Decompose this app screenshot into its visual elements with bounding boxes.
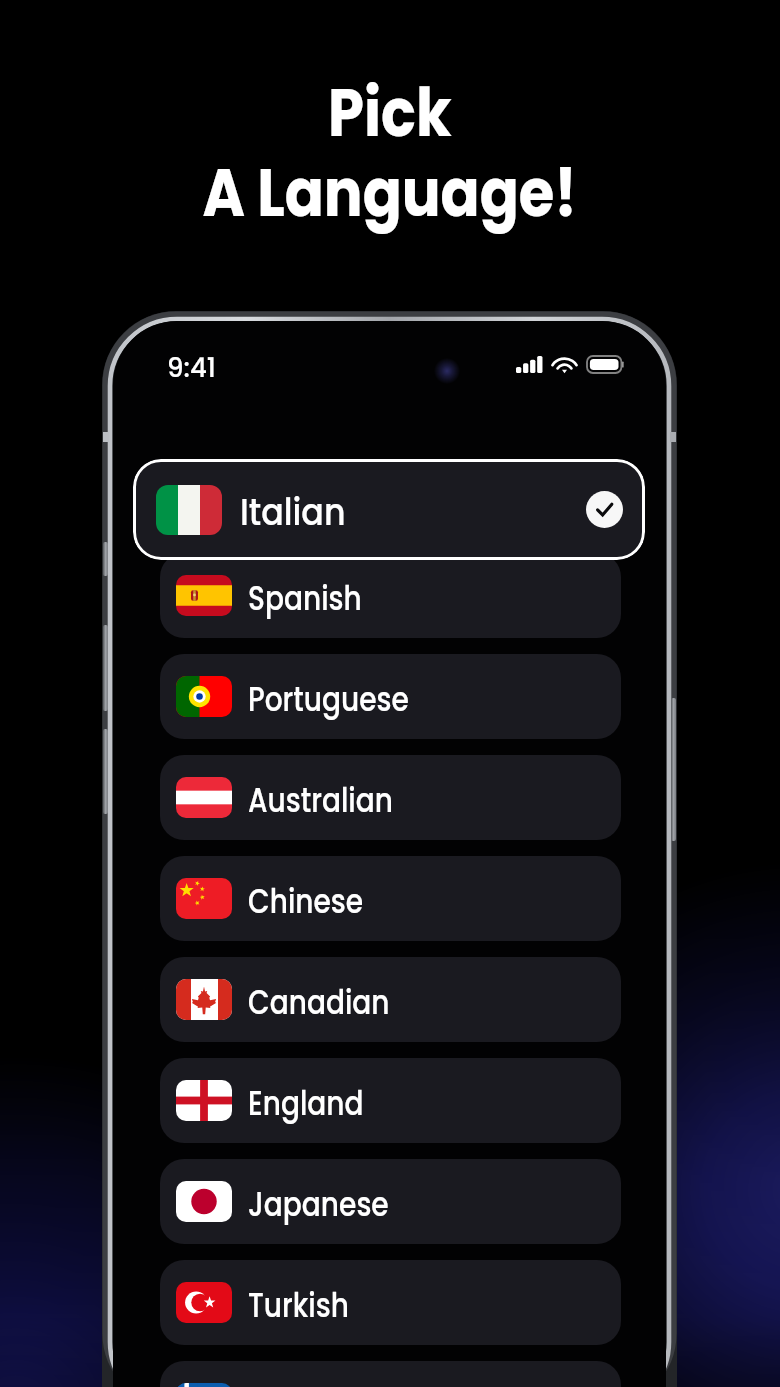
staticText: Canadian — [248, 979, 390, 1025]
staticText: 9:41 — [167, 350, 216, 386]
staticText: Turkish — [248, 1282, 349, 1328]
button[interactable]: England — [160, 1058, 621, 1143]
staticText: Pick — [328, 66, 452, 160]
button[interactable]: Spanish — [160, 553, 621, 638]
button[interactable]: Portuguese — [160, 654, 621, 739]
staticText: Chinese — [248, 878, 364, 924]
staticText: Portuguese — [248, 676, 409, 722]
button[interactable]: Italian — [133, 459, 645, 560]
staticText: England — [248, 1080, 364, 1126]
other: Selected — [586, 491, 623, 528]
button[interactable]: Japanese — [160, 1159, 621, 1244]
staticText: Spanish — [248, 575, 362, 621]
staticText: A Language! — [202, 146, 577, 240]
button[interactable]: Greek — [160, 1361, 621, 1387]
staticText: Australian — [248, 777, 393, 823]
button[interactable]: Chinese — [160, 856, 621, 941]
staticText: Italian — [240, 486, 346, 538]
button[interactable]: Turkish — [160, 1260, 621, 1345]
button[interactable]: Canadian — [160, 957, 621, 1042]
staticText: Japanese — [248, 1181, 389, 1227]
button[interactable]: Australian — [160, 755, 621, 840]
